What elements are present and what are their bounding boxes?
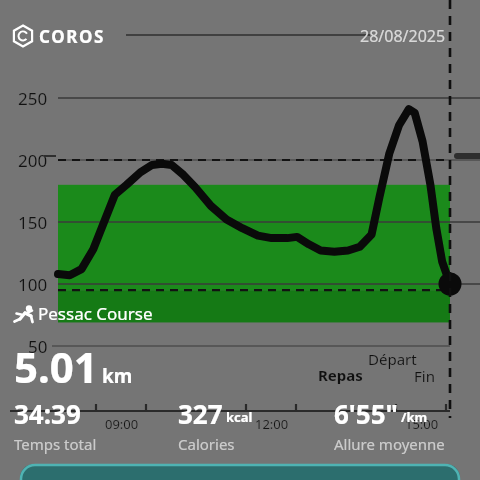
button[interactable] (10, 303, 170, 325)
button[interactable] (178, 396, 324, 452)
button[interactable] (20, 464, 460, 480)
button[interactable]: COROS (12, 24, 124, 48)
button[interactable] (14, 396, 160, 452)
button[interactable] (334, 396, 480, 452)
